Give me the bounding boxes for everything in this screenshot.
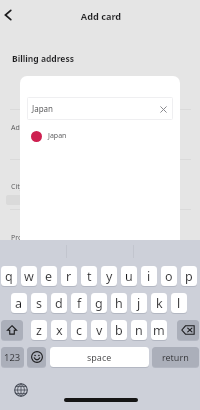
button[interactable]: k xyxy=(151,293,167,313)
staticText: n xyxy=(135,322,143,339)
staticText: x xyxy=(56,322,63,339)
staticText: y xyxy=(106,268,113,285)
button[interactable]: g xyxy=(91,293,107,313)
button[interactable]: r xyxy=(61,266,77,286)
button[interactable]: d xyxy=(51,293,67,313)
button[interactable]: e xyxy=(41,266,57,286)
staticText: Address xyxy=(11,123,38,133)
button[interactable]: Backspace xyxy=(177,320,199,340)
staticText: v xyxy=(96,322,103,339)
staticText: q xyxy=(5,268,13,285)
staticText: Japan xyxy=(32,103,54,114)
staticText: l xyxy=(177,295,181,312)
button[interactable]: t xyxy=(81,266,97,286)
button[interactable]: Shift xyxy=(1,320,23,340)
button[interactable]: q xyxy=(1,266,17,286)
button[interactable]: p xyxy=(181,266,197,286)
button[interactable]: x xyxy=(51,320,67,340)
button[interactable]: space xyxy=(50,347,149,367)
button[interactable]: j xyxy=(131,293,147,313)
staticText: Japan xyxy=(48,131,67,141)
staticText: Billing address xyxy=(12,53,74,65)
staticText: o xyxy=(165,268,173,285)
button[interactable]: Back xyxy=(0,4,24,28)
staticText: r xyxy=(66,268,72,285)
button[interactable]: c xyxy=(71,320,87,340)
staticText: i xyxy=(147,268,151,285)
button[interactable]: b xyxy=(111,320,127,340)
button[interactable]: h xyxy=(111,293,127,313)
button[interactable]: 123 xyxy=(1,347,24,367)
staticText: f xyxy=(77,295,82,312)
button[interactable]: s xyxy=(31,293,47,313)
staticText: s xyxy=(36,295,42,312)
button[interactable]: z xyxy=(31,320,47,340)
button[interactable]: return xyxy=(152,347,199,367)
button[interactable]: Japan xyxy=(20,125,180,147)
staticText: 123 xyxy=(4,351,21,364)
button[interactable]: v xyxy=(91,320,107,340)
button[interactable]: Clear text xyxy=(157,103,170,116)
staticText: h xyxy=(115,295,123,312)
staticText: return xyxy=(162,351,189,363)
staticText: c xyxy=(76,322,83,339)
button[interactable]: o xyxy=(161,266,177,286)
staticText: w xyxy=(24,268,34,285)
button[interactable]: Change keyboard xyxy=(14,383,28,397)
button[interactable]: n xyxy=(131,320,147,340)
staticText: space xyxy=(87,351,112,363)
button[interactable]: y xyxy=(101,266,117,286)
button[interactable]: i xyxy=(141,266,157,286)
staticText: m xyxy=(153,322,165,339)
staticText: u xyxy=(125,268,133,285)
button[interactable]: a xyxy=(11,293,27,313)
staticText: e xyxy=(45,268,53,285)
button[interactable]: l xyxy=(171,293,187,313)
staticText: a xyxy=(15,295,23,312)
button[interactable]: w xyxy=(21,266,37,286)
staticText: b xyxy=(115,322,123,339)
staticText: p xyxy=(185,268,193,285)
button[interactable]: u xyxy=(121,266,137,286)
staticText: j xyxy=(137,295,141,312)
button[interactable]: f xyxy=(71,293,87,313)
staticText: t xyxy=(87,268,92,285)
staticText: Province xyxy=(11,233,40,243)
staticText: g xyxy=(95,295,103,312)
button[interactable]: Japan xyxy=(27,97,173,120)
button[interactable]: Emoji xyxy=(27,347,46,367)
button[interactable]: m xyxy=(151,320,167,340)
staticText: City xyxy=(11,182,24,192)
staticText: d xyxy=(55,295,63,312)
staticText: k xyxy=(156,295,163,312)
staticText: Add card xyxy=(2,10,200,23)
staticText: z xyxy=(36,322,42,339)
